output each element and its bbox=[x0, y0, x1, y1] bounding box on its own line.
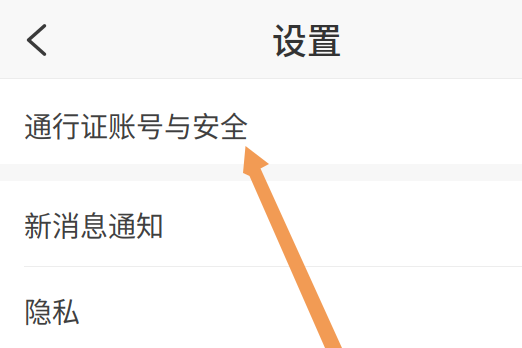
button[interactable]: 通行证账号与安全 bbox=[0, 79, 522, 164]
button[interactable]: 隐私 bbox=[0, 267, 522, 348]
staticText: 通行证账号与安全 bbox=[24, 105, 248, 145]
button[interactable]: 新消息通知 bbox=[0, 181, 522, 266]
staticText: 设置 bbox=[272, 14, 342, 64]
staticText: 新消息通知 bbox=[24, 204, 164, 245]
button[interactable]: Back bbox=[0, 0, 80, 78]
staticText: 隐私 bbox=[24, 290, 80, 331]
